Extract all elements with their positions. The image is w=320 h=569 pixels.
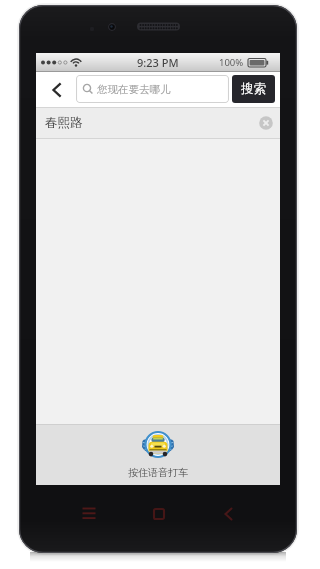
staticText: 按住语音打车 [128, 466, 188, 479]
button[interactable] [256, 113, 276, 133]
button[interactable]: 按住语音打车 [36, 425, 280, 485]
button[interactable]: 春熙路 [36, 108, 280, 138]
button[interactable]: 搜索 [232, 75, 275, 103]
staticText: 您现在要去哪儿 [97, 83, 171, 96]
staticText: 搜索 [241, 81, 266, 97]
button[interactable] [218, 503, 239, 524]
button[interactable] [78, 503, 99, 524]
button[interactable]: 您现在要去哪儿 [76, 75, 229, 103]
button[interactable] [44, 77, 68, 103]
staticText: 100% [219, 56, 244, 69]
staticText: 春熙路 [45, 115, 83, 131]
staticText: 9:23 PM [137, 55, 179, 70]
button[interactable] [148, 503, 169, 524]
